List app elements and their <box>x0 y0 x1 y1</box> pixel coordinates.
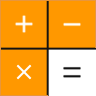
button[interactable]: Multiply <box>0 48 48 96</box>
button[interactable]: Equals <box>48 48 96 96</box>
button[interactable]: Subtract <box>48 0 96 48</box>
button[interactable]: Add <box>0 0 48 48</box>
